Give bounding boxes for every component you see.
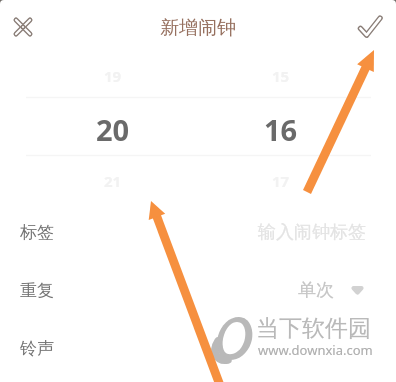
staticText: 16 bbox=[264, 110, 298, 149]
button[interactable]: 标签 bbox=[0, 203, 396, 261]
staticText: 21 bbox=[104, 171, 122, 191]
staticText: 单次 bbox=[298, 279, 334, 302]
staticText: 标签 bbox=[20, 222, 54, 243]
staticText: 当下软件园 bbox=[256, 314, 371, 343]
staticText: www.downxia.com bbox=[258, 341, 373, 359]
staticText: 重复 bbox=[20, 280, 54, 301]
staticText: 15 bbox=[272, 66, 290, 86]
staticText: 新增闹钟 bbox=[160, 16, 236, 40]
staticText: 17 bbox=[272, 171, 290, 191]
staticText: 输入闹钟标签 bbox=[258, 221, 366, 244]
staticText: 19 bbox=[104, 66, 122, 86]
staticText: 20 bbox=[96, 110, 130, 149]
button[interactable]: Confirm bbox=[354, 11, 386, 43]
staticText: 铃声 bbox=[20, 338, 54, 359]
button[interactable]: 铃声 bbox=[0, 319, 396, 377]
button[interactable]: 重复 bbox=[0, 261, 396, 319]
button[interactable]: Close bbox=[9, 13, 37, 41]
